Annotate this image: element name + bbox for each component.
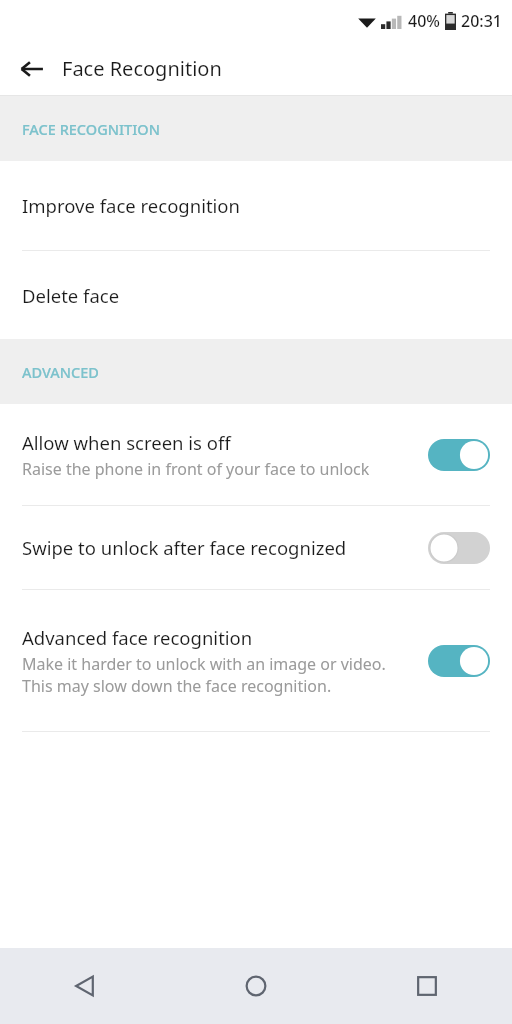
staticText: Swipe to unlock after face recognized <box>22 535 347 560</box>
button[interactable]: Toggle off <box>428 532 490 564</box>
button[interactable]: Recent apps <box>341 948 512 1024</box>
button[interactable]: Back <box>0 948 170 1024</box>
button[interactable]: Allow when screen is off <box>0 404 512 505</box>
button[interactable]: Swipe to unlock after face recognized <box>0 506 512 589</box>
button[interactable]: Improve face recognition <box>0 161 512 250</box>
staticText: Improve face recognition <box>22 193 240 218</box>
staticText: ADVANCED <box>22 362 99 382</box>
button[interactable]: Delete face <box>0 251 512 339</box>
staticText: Allow when screen is off <box>22 430 231 455</box>
staticText: Face Recognition <box>62 55 222 82</box>
button[interactable]: Advanced face recognition <box>0 590 512 731</box>
staticText: Raise the phone in front of your face to… <box>22 458 370 480</box>
staticText: 40% <box>408 10 440 32</box>
button[interactable]: Toggle on <box>428 439 490 471</box>
staticText: 20:31 <box>461 10 502 32</box>
staticText: Advanced face recognition <box>22 625 253 650</box>
staticText: Delete face <box>22 283 120 308</box>
button[interactable]: Toggle on <box>428 645 490 677</box>
button[interactable]: Home <box>170 948 341 1024</box>
staticText: FACE RECOGNITION <box>22 119 160 139</box>
button[interactable]: Back <box>8 45 56 93</box>
staticText: Make it harder to unlock with an image o… <box>22 653 416 697</box>
